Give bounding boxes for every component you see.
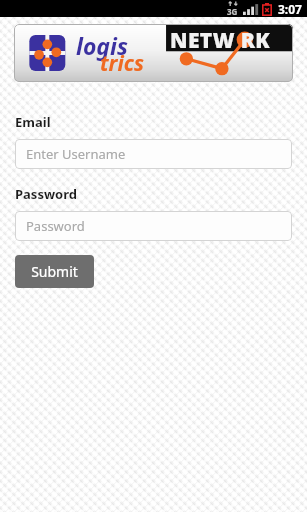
staticText: Email bbox=[15, 113, 51, 131]
button[interactable]: Email input field bbox=[15, 139, 292, 169]
staticText: logis bbox=[76, 30, 128, 61]
staticText: Password bbox=[26, 217, 85, 235]
staticText: Submit bbox=[31, 262, 78, 281]
staticText: Password bbox=[15, 185, 77, 203]
staticText: 3G bbox=[227, 6, 238, 17]
button[interactable]: Password input field bbox=[15, 211, 292, 241]
staticText: trics bbox=[100, 49, 144, 78]
staticText: NETW RK bbox=[170, 26, 271, 55]
button[interactable]: Submit bbox=[15, 255, 94, 288]
staticText: Enter Username bbox=[26, 145, 126, 163]
staticText: 3:07 bbox=[278, 1, 302, 17]
